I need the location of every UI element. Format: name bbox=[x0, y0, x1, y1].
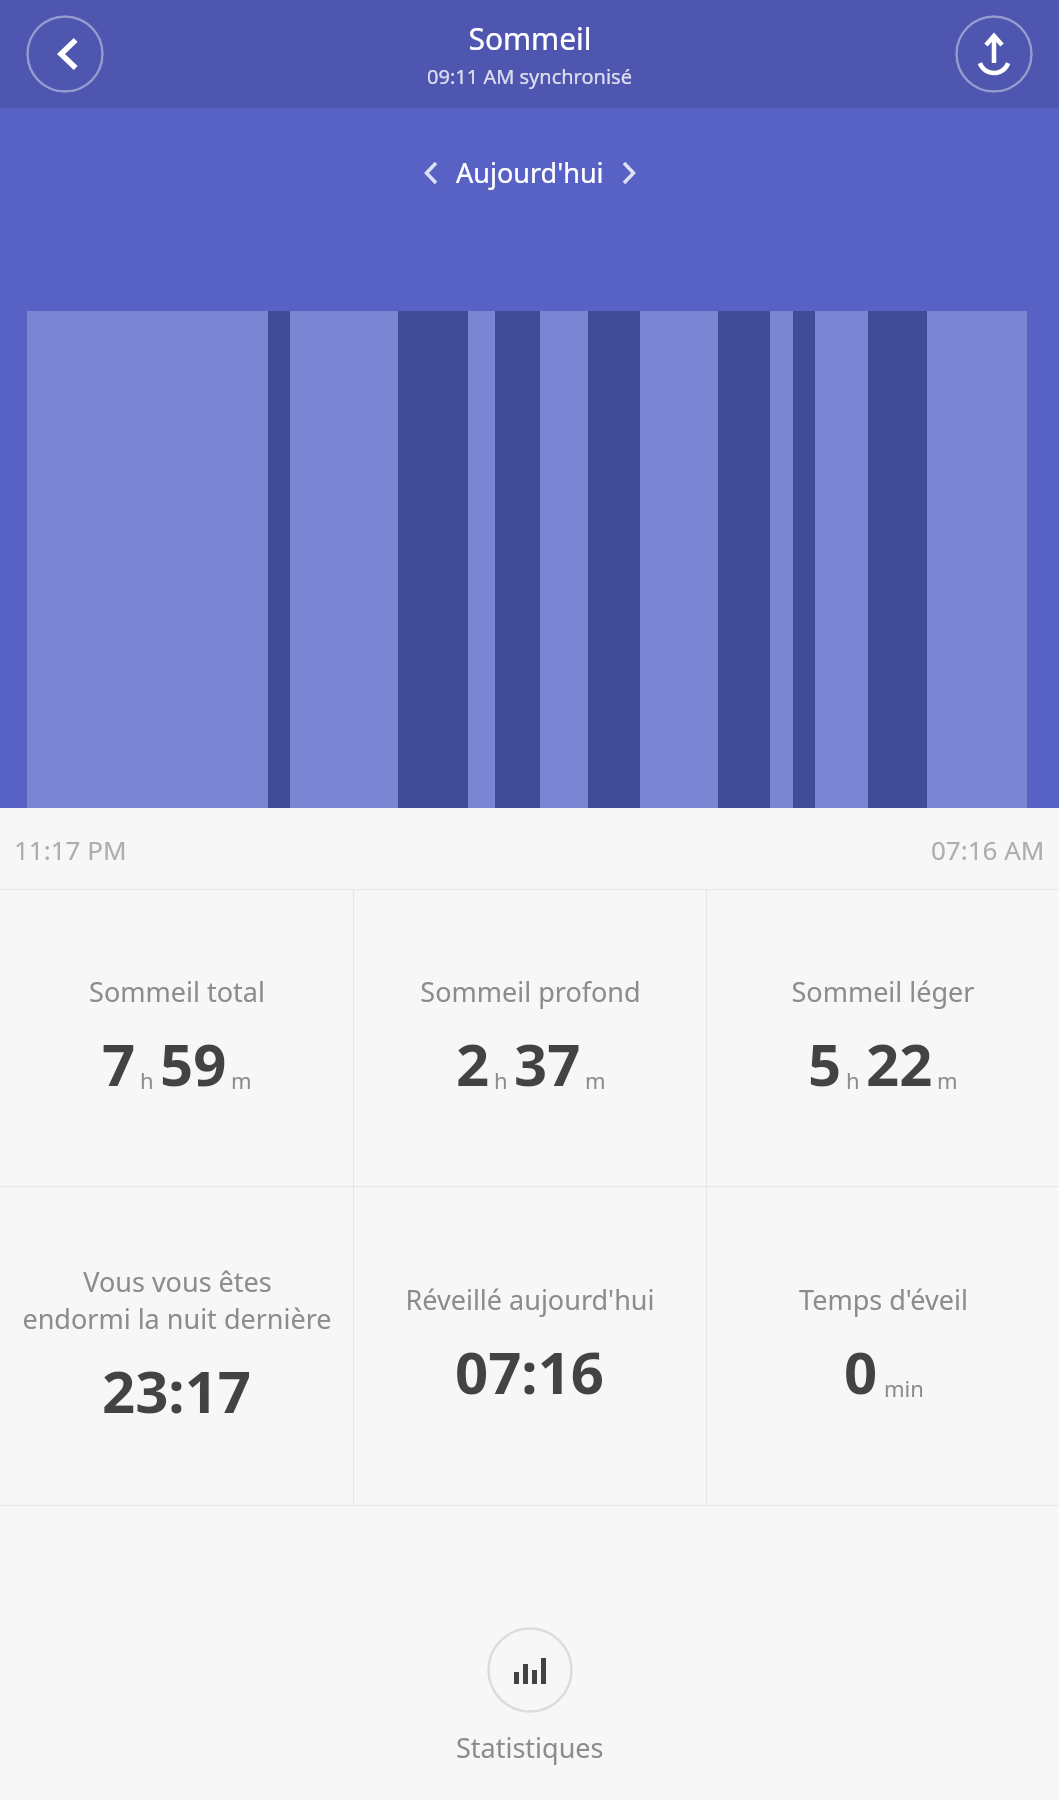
staticText: Sommeil bbox=[468, 18, 592, 59]
staticText: Sommeil profond bbox=[420, 973, 641, 1010]
button[interactable]: Aujourd'hui bbox=[402, 148, 658, 197]
staticText: 22 bbox=[866, 1024, 933, 1103]
staticText: 0 bbox=[844, 1332, 878, 1411]
staticText: h bbox=[494, 1065, 508, 1095]
button[interactable]: Temps d'éveil bbox=[707, 1187, 1059, 1505]
staticText: Sommeil léger bbox=[791, 973, 975, 1010]
button[interactable]: Réveillé aujourd'hui bbox=[354, 1187, 706, 1505]
staticText: Réveillé aujourd'hui bbox=[405, 1281, 655, 1318]
staticText: 37 bbox=[514, 1024, 581, 1103]
staticText: Temps d'éveil bbox=[799, 1281, 968, 1318]
button[interactable]: Sommeil total bbox=[0, 890, 353, 1186]
staticText: 11:17 PM bbox=[14, 832, 127, 867]
staticText: 59 bbox=[160, 1024, 227, 1103]
staticText: 07:16 AM bbox=[931, 832, 1045, 867]
staticText: m bbox=[585, 1065, 606, 1095]
button[interactable]: Partager bbox=[955, 15, 1033, 93]
button[interactable]: Sommeil profond bbox=[354, 890, 706, 1186]
staticText: 2 bbox=[456, 1024, 490, 1103]
staticText: Aujourd'hui bbox=[456, 154, 604, 191]
staticText: m bbox=[231, 1065, 252, 1095]
staticText: endormi la nuit dernière bbox=[22, 1300, 332, 1337]
button[interactable]: Vous vous êtes bbox=[0, 1187, 353, 1505]
button[interactable]: Retour bbox=[26, 15, 104, 93]
button[interactable]: Sommeil léger bbox=[707, 890, 1059, 1186]
staticText: 23:17 bbox=[102, 1351, 252, 1430]
staticText: 7 bbox=[102, 1024, 136, 1103]
staticText: 09:11 AM synchronisé bbox=[427, 63, 632, 90]
staticText: min bbox=[884, 1373, 924, 1403]
staticText: Vous vous êtes bbox=[83, 1263, 272, 1300]
button[interactable]: Statistiques bbox=[0, 1601, 1059, 1800]
staticText: 5 bbox=[808, 1024, 842, 1103]
staticText: 07:16 bbox=[455, 1332, 605, 1411]
staticText: h bbox=[140, 1065, 154, 1095]
staticText: Sommeil total bbox=[89, 973, 265, 1010]
staticText: m bbox=[937, 1065, 958, 1095]
staticText: Statistiques bbox=[456, 1729, 604, 1766]
staticText: h bbox=[846, 1065, 860, 1095]
